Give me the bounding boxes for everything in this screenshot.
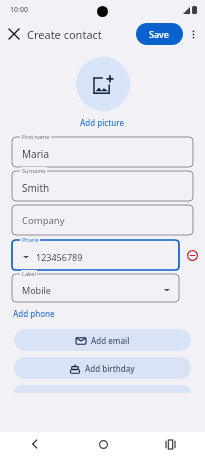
button[interactable]: More options bbox=[184, 25, 202, 43]
button[interactable]: Recent apps bbox=[161, 435, 179, 453]
button[interactable]: Home bbox=[94, 435, 112, 453]
button[interactable]: Back bbox=[26, 435, 44, 453]
staticText: Phone bbox=[22, 236, 39, 243]
button[interactable]: Company bbox=[12, 205, 193, 235]
staticText: Maria bbox=[22, 147, 49, 161]
button[interactable]: Remove phone bbox=[183, 246, 201, 264]
button[interactable]: Label bbox=[12, 274, 179, 302]
button[interactable]: Add picture bbox=[80, 117, 125, 128]
staticText: First name bbox=[22, 133, 50, 140]
button[interactable]: Add picture bbox=[76, 57, 130, 111]
staticText: 10:00 bbox=[10, 5, 28, 15]
staticText: Mobile bbox=[22, 284, 51, 296]
staticText: Save bbox=[149, 28, 170, 40]
button[interactable]: Close bbox=[4, 24, 24, 44]
button[interactable]: Phone bbox=[12, 240, 179, 270]
staticText: Company bbox=[22, 214, 65, 227]
staticText: Add email bbox=[91, 335, 130, 346]
staticText: 123456789 bbox=[36, 251, 83, 263]
button[interactable]: Add email bbox=[14, 329, 191, 351]
staticText: Surname bbox=[22, 167, 46, 174]
button[interactable]: Save bbox=[136, 23, 183, 45]
button[interactable]: First name bbox=[12, 137, 193, 167]
button[interactable] bbox=[14, 385, 191, 393]
button[interactable]: Surname bbox=[12, 171, 193, 201]
staticText: Smith bbox=[22, 181, 50, 195]
staticText: Label bbox=[22, 270, 36, 277]
button[interactable]: Add birthday bbox=[14, 357, 191, 379]
staticText: Add phone bbox=[13, 308, 55, 319]
staticText: Add birthday bbox=[85, 363, 135, 374]
staticText: Create contact bbox=[27, 27, 102, 42]
button[interactable]: Add phone bbox=[13, 305, 55, 322]
